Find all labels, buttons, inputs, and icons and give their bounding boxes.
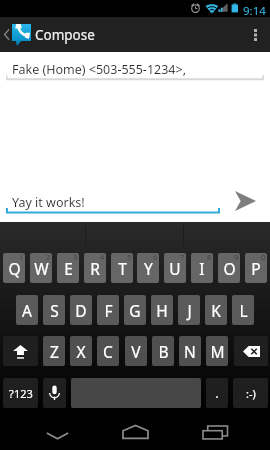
button[interactable]: M (206, 336, 228, 366)
button[interactable]: U (164, 253, 186, 283)
staticText: U (169, 258, 181, 279)
button[interactable]: N (179, 336, 201, 366)
staticText: :-) (246, 386, 256, 401)
staticText: B (158, 341, 169, 362)
staticText: 6 (153, 253, 158, 262)
button[interactable]: Z (43, 336, 65, 366)
button[interactable]: Delete (234, 336, 268, 366)
button[interactable]: Y (137, 253, 159, 283)
button[interactable]: V (125, 336, 147, 366)
staticText: T (118, 258, 127, 279)
staticText: Fake (Home) <503-555-1234>, (12, 61, 186, 78)
staticText: A (22, 300, 32, 321)
staticText: M (210, 341, 225, 362)
staticText: 3 (73, 253, 78, 262)
staticText: I (199, 258, 205, 279)
button[interactable]: Q (3, 253, 25, 283)
staticText: 2 (46, 253, 51, 262)
button[interactable]: X (70, 336, 92, 366)
button[interactable]: Send (226, 184, 264, 218)
staticText: Yay it works! (12, 194, 85, 211)
staticText: O (223, 258, 236, 279)
button[interactable]: C (97, 336, 119, 366)
staticText: K (211, 300, 221, 321)
button[interactable]: Voice input (43, 378, 66, 408)
staticText: 0 (261, 253, 266, 262)
button[interactable]: Home (101, 414, 169, 450)
staticText: X (76, 341, 86, 362)
staticText: W (34, 258, 49, 279)
button[interactable]: P (245, 253, 267, 283)
staticText: G (129, 300, 141, 321)
staticText: Y (144, 258, 153, 279)
staticText: Compose (35, 26, 95, 44)
button[interactable]: D (70, 295, 92, 325)
button[interactable]: Symbols (3, 378, 38, 408)
button[interactable]: L (232, 295, 254, 325)
button[interactable]: :-) (233, 378, 268, 408)
button[interactable]: K (205, 295, 227, 325)
staticText: 1 (19, 253, 24, 262)
staticText: D (75, 300, 87, 321)
button[interactable]: More options (240, 17, 270, 52)
button[interactable]: B (152, 336, 174, 366)
button[interactable]: S (43, 295, 65, 325)
staticText: S (50, 300, 59, 321)
staticText: 9:14 (243, 3, 266, 19)
staticText: H (156, 300, 168, 321)
staticText: C (103, 341, 113, 362)
staticText: ?123 (9, 386, 33, 401)
button[interactable]: T (111, 253, 133, 283)
button[interactable]: E (57, 253, 79, 283)
staticText: 8 (207, 253, 212, 262)
staticText: N (184, 341, 196, 362)
button[interactable]: O (218, 253, 240, 283)
staticText: Q (8, 258, 21, 279)
button[interactable]: W (30, 253, 52, 283)
button[interactable]: Back (23, 414, 91, 450)
staticText: . (215, 384, 219, 402)
staticText: L (239, 300, 248, 321)
staticText: J (187, 300, 192, 321)
button[interactable]: Recent apps (181, 414, 249, 450)
button[interactable]: H (151, 295, 173, 325)
staticText: 5 (127, 253, 132, 262)
button[interactable]: I (191, 253, 213, 283)
button[interactable]: A (16, 295, 38, 325)
staticText: 4 (100, 253, 105, 262)
staticText: E (64, 258, 73, 279)
staticText: Z (50, 341, 59, 362)
button[interactable]: Shift (3, 336, 38, 366)
staticText: F (104, 300, 113, 321)
button[interactable]: Navigate up (0, 17, 99, 52)
button[interactable]: R (84, 253, 106, 283)
button[interactable]: . (206, 378, 228, 408)
button[interactable]: J (178, 295, 200, 325)
button[interactable]: F (97, 295, 119, 325)
staticText: R (90, 258, 100, 279)
button[interactable]: G (124, 295, 146, 325)
staticText: 9 (234, 253, 239, 262)
staticText: 7 (180, 253, 185, 262)
staticText: P (251, 258, 261, 279)
staticText: V (131, 341, 141, 362)
